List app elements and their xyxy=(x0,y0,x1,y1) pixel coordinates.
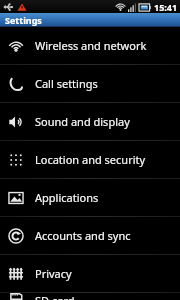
button[interactable]: Applications xyxy=(0,179,180,216)
other: Wireless and network xyxy=(7,37,25,55)
staticText: 15:41 xyxy=(154,1,178,13)
other: Call settings xyxy=(7,75,25,93)
staticText: SD card xyxy=(35,293,75,300)
staticText: Location and security xyxy=(35,152,146,167)
button[interactable]: SD card xyxy=(0,293,180,300)
button[interactable]: Location and security xyxy=(0,141,180,178)
other: Accounts and sync xyxy=(7,227,25,245)
button[interactable]: Call settings xyxy=(0,65,180,102)
other: Location and security xyxy=(7,151,25,169)
staticText: Call settings xyxy=(35,76,98,91)
staticText: Applications xyxy=(35,190,99,205)
staticText: Sound and display xyxy=(35,114,130,129)
staticText: Privacy xyxy=(35,266,72,281)
staticText: Wireless and network xyxy=(35,38,147,53)
other: Applications xyxy=(7,189,25,207)
button[interactable]: Privacy xyxy=(0,255,180,292)
button[interactable]: Sound and display xyxy=(0,103,180,140)
button[interactable]: Wireless and network xyxy=(0,27,180,64)
staticText: Accounts and sync xyxy=(35,228,131,243)
other: Privacy xyxy=(7,265,25,283)
other: SD card xyxy=(7,293,25,300)
button[interactable]: Accounts and sync xyxy=(0,217,180,254)
staticText: Settings xyxy=(5,14,42,26)
other: Sound and display xyxy=(7,113,25,131)
